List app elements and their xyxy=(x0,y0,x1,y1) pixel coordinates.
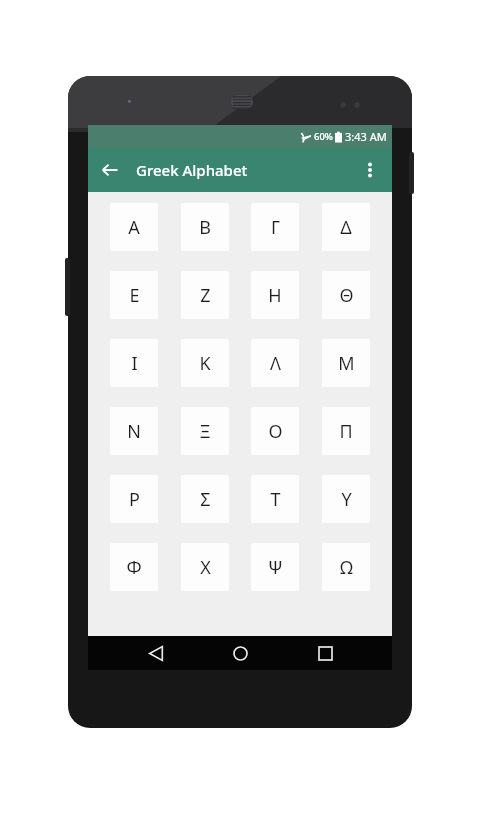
staticText: Υ xyxy=(341,487,352,512)
button[interactable]: Δ xyxy=(322,203,370,251)
staticText: Ι xyxy=(131,351,138,376)
button[interactable]: Π xyxy=(322,407,370,455)
staticText: Κ xyxy=(199,351,211,376)
button[interactable]: Φ xyxy=(110,543,158,591)
staticText: Ψ xyxy=(268,555,283,580)
button[interactable]: More options xyxy=(348,148,392,192)
button[interactable]: Recent apps xyxy=(308,636,342,670)
staticText: Λ xyxy=(270,351,281,376)
button[interactable]: Ν xyxy=(110,407,158,455)
staticText: Ρ xyxy=(129,487,140,512)
button[interactable]: Η xyxy=(251,271,299,319)
button[interactable]: Ε xyxy=(110,271,158,319)
button[interactable]: Ρ xyxy=(110,475,158,523)
staticText: Τ xyxy=(270,487,281,512)
button[interactable]: Α xyxy=(110,203,158,251)
staticText: Φ xyxy=(126,555,142,580)
button[interactable]: Γ xyxy=(251,203,299,251)
button[interactable]: Χ xyxy=(181,543,229,591)
staticText: Π xyxy=(339,419,353,444)
button[interactable]: Υ xyxy=(322,475,370,523)
button[interactable]: Ω xyxy=(322,543,370,591)
button[interactable]: Τ xyxy=(251,475,299,523)
button[interactable]: Back xyxy=(88,148,132,192)
button[interactable]: Ο xyxy=(251,407,299,455)
staticText: Θ xyxy=(339,283,354,308)
button[interactable]: Home xyxy=(223,636,257,670)
staticText: Ο xyxy=(268,419,283,444)
staticText: Ν xyxy=(127,419,141,444)
staticText: Α xyxy=(128,215,140,240)
staticText: Χ xyxy=(200,555,211,580)
staticText: Ω xyxy=(340,555,353,580)
button[interactable]: Ι xyxy=(110,339,158,387)
staticText: Σ xyxy=(200,487,211,512)
staticText: Ξ xyxy=(199,419,211,444)
staticText: Ε xyxy=(129,283,140,308)
button[interactable]: Λ xyxy=(251,339,299,387)
button[interactable]: Κ xyxy=(181,339,229,387)
button[interactable]: Θ xyxy=(322,271,370,319)
button[interactable]: Β xyxy=(181,203,229,251)
staticText: 60% xyxy=(314,130,333,143)
button[interactable]: Ξ xyxy=(181,407,229,455)
staticText: Δ xyxy=(340,215,352,240)
staticText: Η xyxy=(268,283,282,308)
staticText: Ζ xyxy=(200,283,211,308)
button[interactable]: Ψ xyxy=(251,543,299,591)
staticText: Γ xyxy=(271,215,280,240)
button[interactable]: Back xyxy=(139,636,173,670)
button[interactable]: Μ xyxy=(322,339,370,387)
button[interactable]: Ζ xyxy=(181,271,229,319)
staticText: 3:43 AM xyxy=(345,129,387,144)
staticText: Β xyxy=(199,215,211,240)
staticText: Greek Alphabet xyxy=(136,160,248,180)
staticText: Μ xyxy=(338,351,355,376)
button[interactable]: Σ xyxy=(181,475,229,523)
